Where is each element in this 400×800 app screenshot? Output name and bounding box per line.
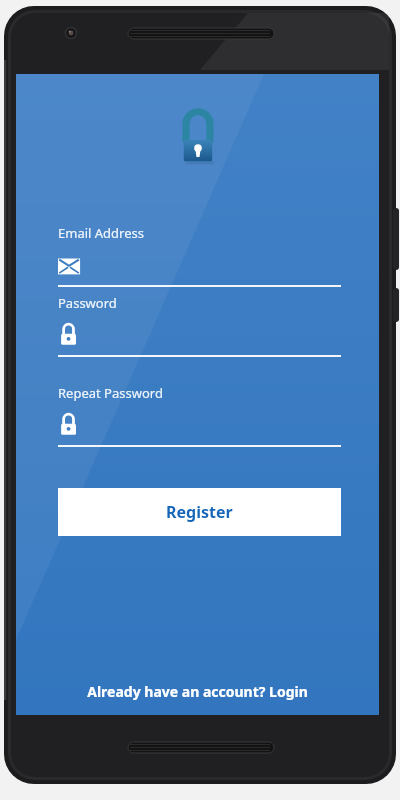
staticText: Email Address	[58, 224, 144, 242]
staticText: Already have an account? Login	[87, 682, 308, 701]
button[interactable]: Register	[58, 488, 341, 536]
staticText: Register	[166, 501, 233, 523]
staticText: Repeat Password	[58, 384, 163, 402]
button[interactable]: Password	[58, 294, 341, 357]
button[interactable]: Repeat Password	[58, 384, 341, 447]
button[interactable]: Email Address	[58, 224, 341, 287]
staticText: Password	[58, 294, 117, 312]
button[interactable]: Already have an account? Login	[16, 678, 379, 704]
other: Email	[58, 255, 82, 277]
other: Password	[58, 415, 82, 437]
other: Password	[58, 325, 82, 347]
